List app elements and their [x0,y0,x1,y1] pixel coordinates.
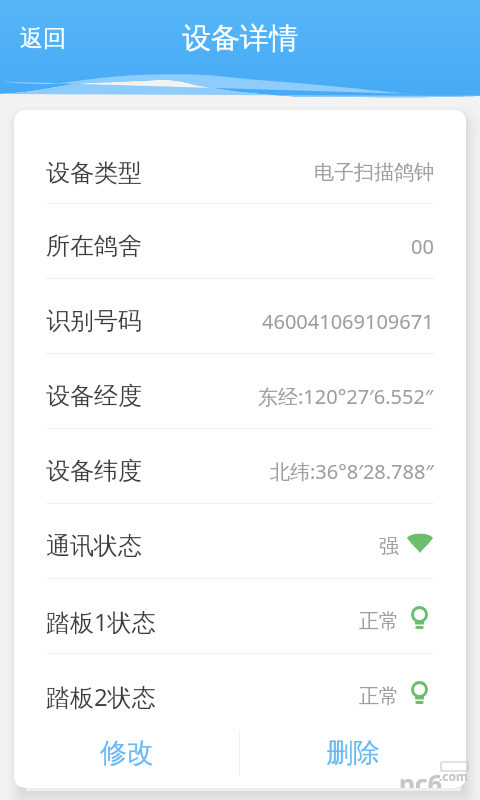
staticText: 踏板1状态 [46,605,156,638]
staticText: 踏板2状态 [46,680,156,713]
staticText: 正常 [359,609,399,634]
staticText: 强 [379,534,399,559]
staticText: 通讯状态 [46,531,142,561]
staticText: 460041069109671 [262,308,434,335]
staticText: 设备经度 [46,381,142,411]
button[interactable]: 返回 [6,18,80,59]
staticText: 返回 [20,24,66,53]
button[interactable]: 踏板2状态 [14,654,466,728]
button[interactable]: 设备经度 [14,354,466,428]
button[interactable]: 所在鸽舍 [14,204,466,278]
button[interactable]: 通讯状态 [14,504,466,578]
button[interactable]: 识别号码 [14,279,466,353]
staticText: 设备纬度 [46,456,142,486]
staticText: 正常 [359,684,399,709]
staticText: 东经:120°27′6.552″ [258,383,434,410]
staticText: 北纬:36°8′28.788″ [270,458,434,485]
staticText: .com [439,768,468,784]
button[interactable]: 删除 [240,728,466,788]
button[interactable]: 设备类型 [14,110,466,203]
staticText: 识别号码 [46,306,142,336]
staticText: 00 [411,233,434,260]
staticText: 设备详情 [182,20,298,57]
staticText: 设备类型 [46,158,142,188]
button[interactable]: 踏板1状态 [14,579,466,653]
staticText: pc6 [399,766,443,788]
staticText: 所在鸽舍 [46,231,142,261]
button[interactable]: 设备纬度 [14,429,466,503]
button[interactable]: 修改 [14,728,239,788]
staticText: 删除 [326,736,380,770]
staticText: 电子扫描鸽钟 [314,160,434,185]
staticText: 修改 [100,736,154,770]
